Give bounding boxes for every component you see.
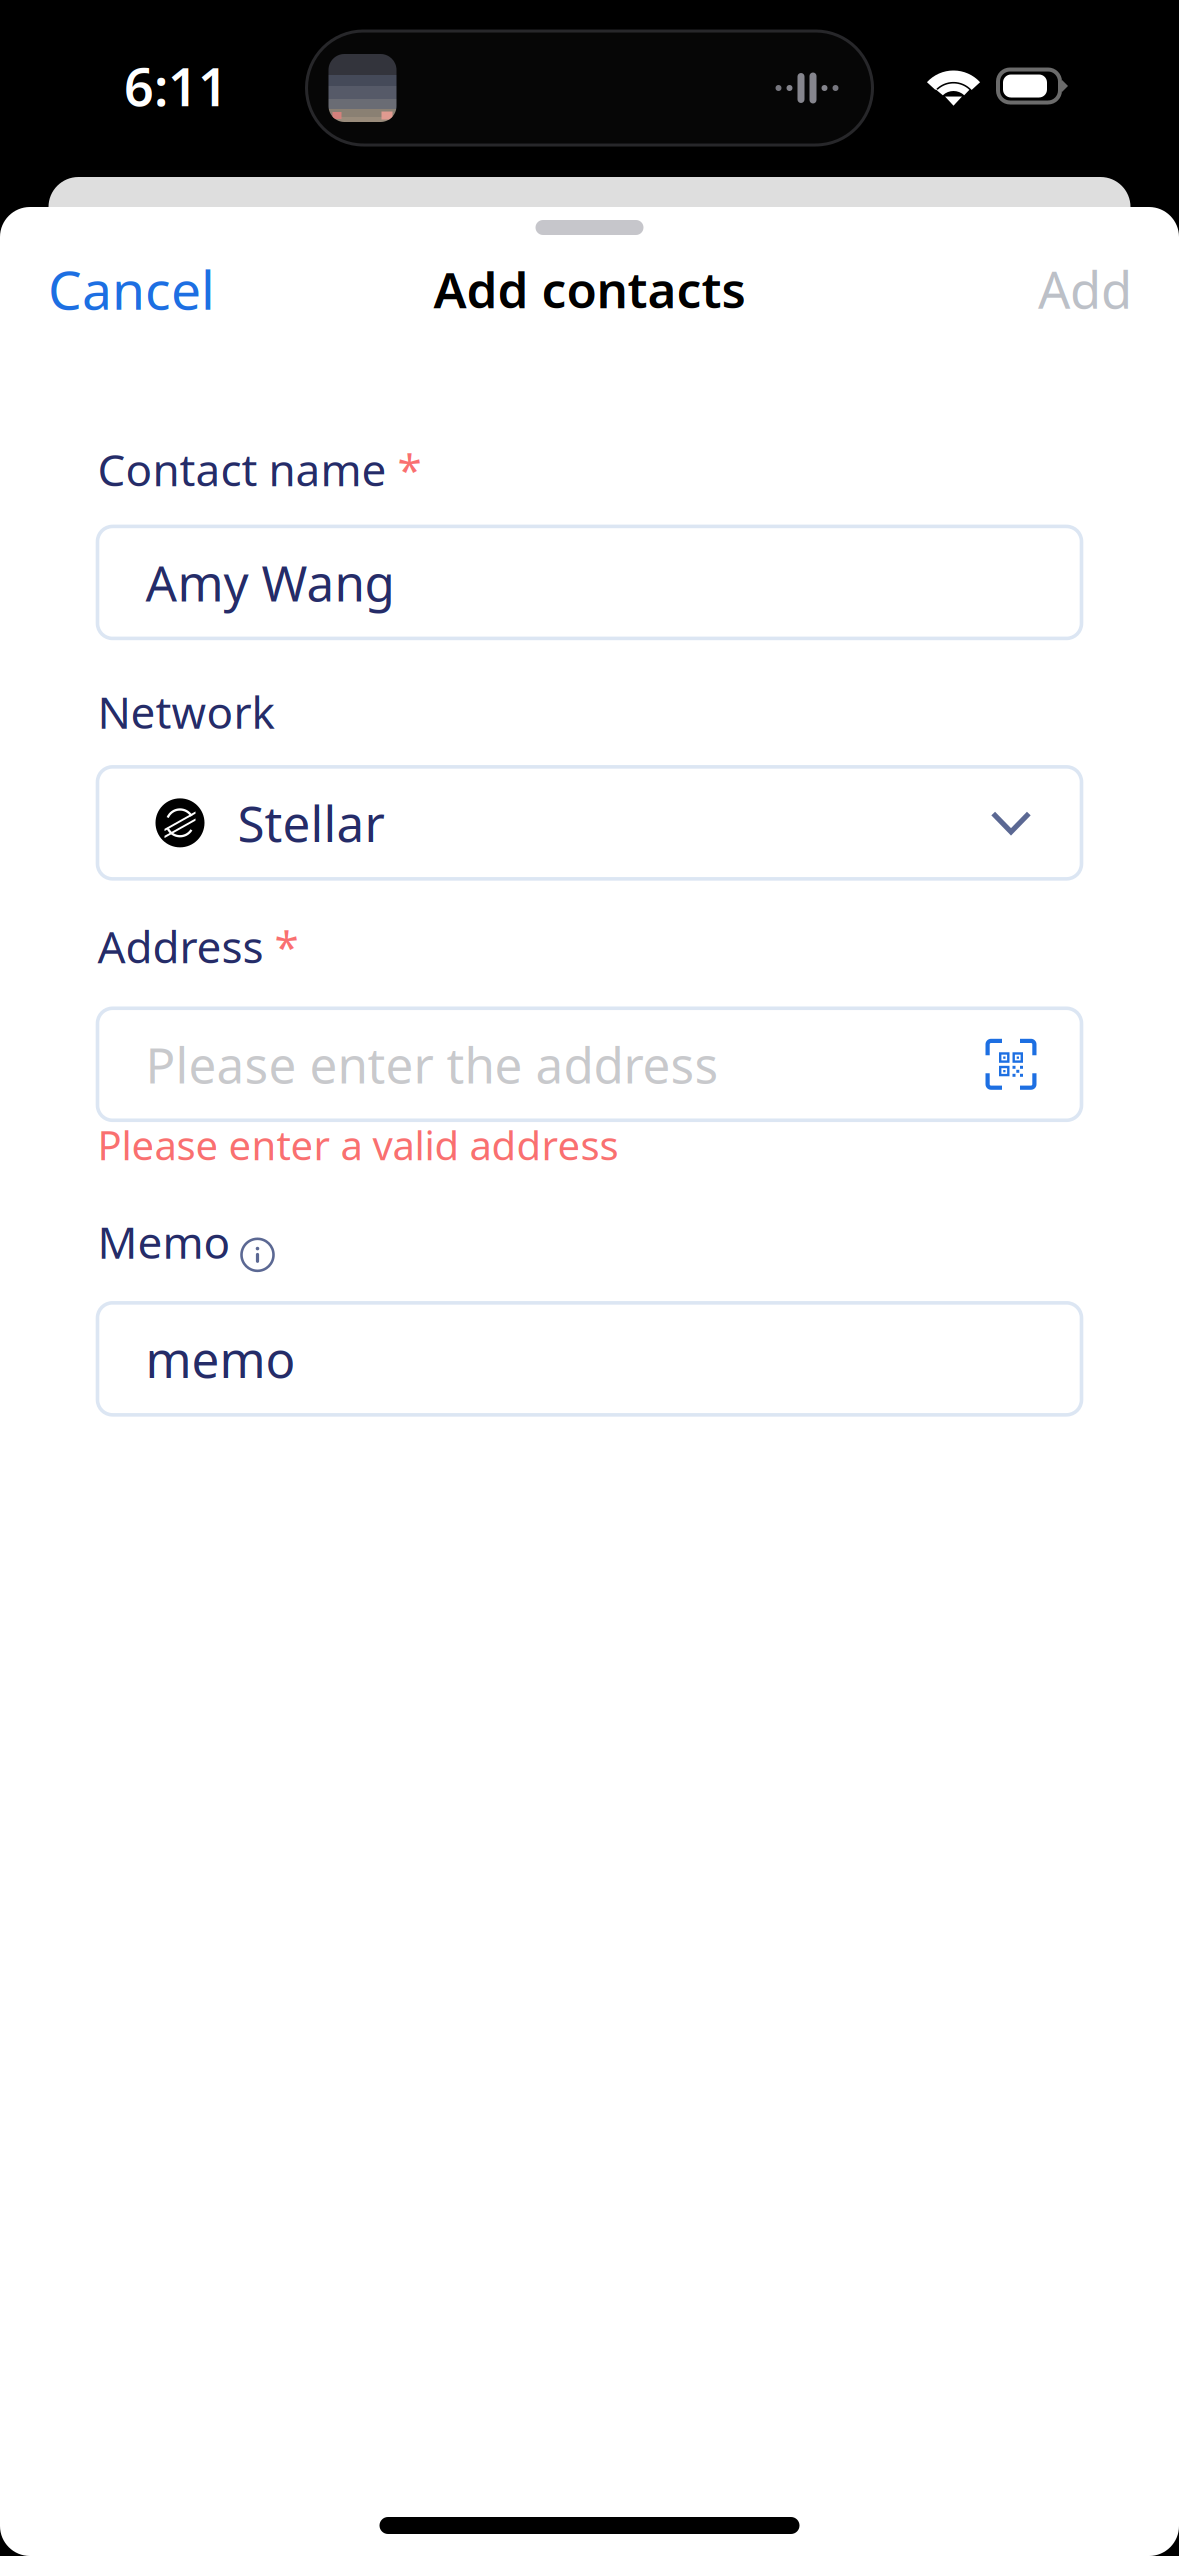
staticText: 6:11	[124, 51, 228, 121]
staticText: *	[386, 440, 421, 498]
staticText: Add contacts	[433, 256, 745, 322]
staticText: memo	[145, 1326, 295, 1392]
staticText: *	[263, 917, 298, 975]
staticText: Address	[97, 917, 263, 975]
staticText: Please enter the address	[145, 1031, 718, 1097]
staticText: Memo	[97, 1212, 230, 1271]
button[interactable]: Add	[1010, 241, 1179, 337]
staticText: Please enter a valid address	[97, 1118, 618, 1171]
staticText: Amy Wang	[145, 550, 394, 615]
button[interactable]: Cancel	[0, 240, 249, 338]
staticText: Stellar	[237, 790, 384, 856]
button[interactable]: Stellar	[97, 767, 1081, 879]
staticText: Network	[97, 682, 274, 741]
staticText: Contact name	[97, 440, 386, 498]
staticText: Add	[1038, 255, 1132, 323]
staticText: Cancel	[48, 254, 215, 324]
